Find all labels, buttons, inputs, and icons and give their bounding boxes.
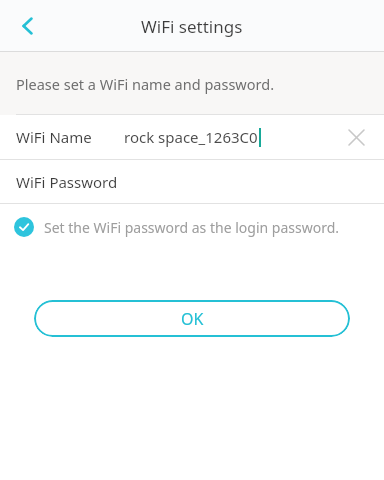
button[interactable]: Back xyxy=(6,4,50,48)
staticText: Set the WiFi password as the login passw… xyxy=(44,218,340,237)
staticText: Please set a WiFi name and password. xyxy=(16,74,275,94)
button[interactable]: OK xyxy=(34,300,350,337)
staticText: WiFi settings xyxy=(141,15,243,38)
staticText: WiFi Name xyxy=(16,127,92,147)
staticText: WiFi Password xyxy=(16,172,118,192)
button[interactable]: WiFi Name xyxy=(0,115,384,159)
staticText: rock space_1263C0 xyxy=(124,127,258,147)
button[interactable]: Set the WiFi password as the login passw… xyxy=(0,204,384,250)
button[interactable]: WiFi Password xyxy=(0,160,384,203)
staticText: OK xyxy=(181,308,204,330)
button[interactable]: Clear WiFi name xyxy=(340,121,372,153)
